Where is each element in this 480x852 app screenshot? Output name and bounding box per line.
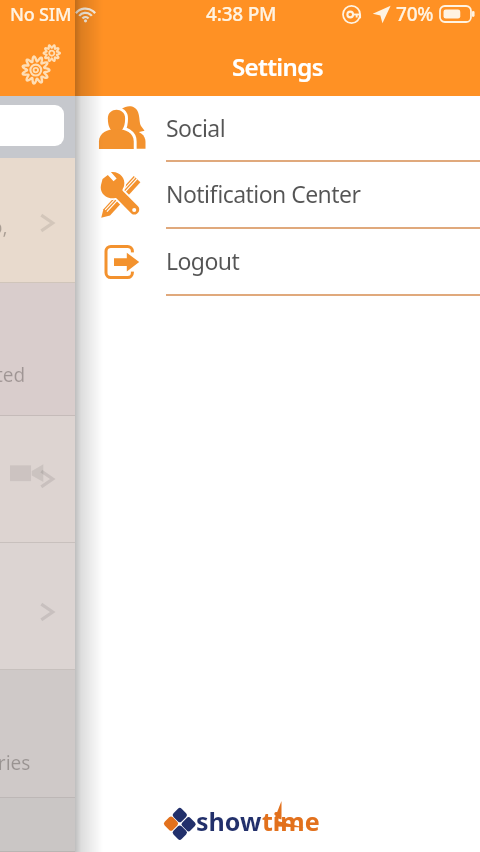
button[interactable]: Social <box>75 96 480 162</box>
staticText: Settings <box>232 50 323 83</box>
staticText: tries <box>0 750 31 776</box>
staticText: No SIM <box>10 2 72 27</box>
button[interactable]: Notification Center <box>75 162 480 229</box>
staticText: time <box>262 804 320 838</box>
button[interactable]: Settings <box>17 40 64 87</box>
staticText: show <box>196 804 262 838</box>
staticText: Notification Center <box>166 178 361 209</box>
staticText: Logout <box>166 245 240 276</box>
staticText: Social <box>166 112 226 143</box>
staticText: ited <box>0 362 26 388</box>
staticText: o, <box>0 214 8 240</box>
staticText: 4:38 PM <box>206 1 277 27</box>
button[interactable]: Logout <box>75 229 480 296</box>
staticText: 70% <box>396 1 434 27</box>
